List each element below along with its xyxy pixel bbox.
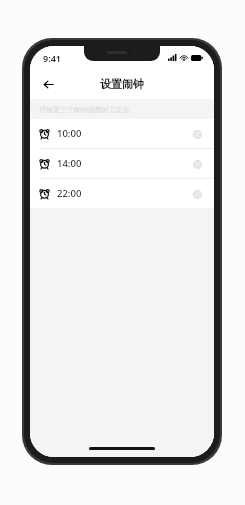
staticText: 9:41 bbox=[43, 52, 61, 64]
staticText: 10:00 bbox=[57, 127, 82, 140]
staticText: 14:00 bbox=[57, 157, 82, 170]
button[interactable]: Remove alarm bbox=[189, 186, 205, 202]
button[interactable]: Remove alarm bbox=[189, 156, 205, 172]
staticText: 22:00 bbox=[57, 187, 82, 200]
button[interactable]: 10:00 bbox=[30, 119, 214, 148]
button[interactable]: Back bbox=[37, 73, 59, 95]
button[interactable]: 14:00 bbox=[30, 149, 214, 178]
staticText: 可设置三个闹钟提醒对方定位 bbox=[39, 105, 130, 114]
button[interactable]: 22:00 bbox=[30, 179, 214, 208]
button[interactable]: Remove alarm bbox=[189, 126, 205, 142]
staticText: 设置闹钟 bbox=[100, 77, 144, 91]
